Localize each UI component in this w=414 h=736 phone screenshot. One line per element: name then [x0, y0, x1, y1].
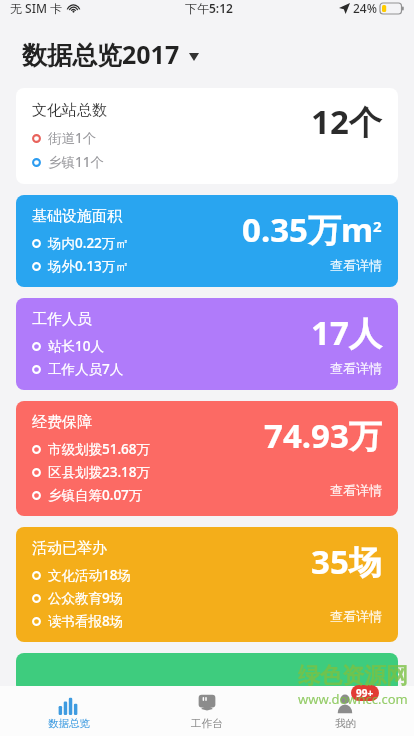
- button[interactable]: 数据总览: [0, 686, 138, 736]
- staticText: 活动已举办: [32, 539, 107, 558]
- staticText: 查看详情: [330, 257, 382, 273]
- staticText: 35场: [311, 539, 382, 584]
- staticText: 数据总览: [48, 717, 90, 730]
- staticText: www.downcc.com: [298, 690, 408, 708]
- staticText: 数据总览2017: [22, 37, 180, 71]
- staticText: 场外0.13万㎡: [48, 257, 129, 275]
- staticText: 经费保障: [32, 413, 92, 432]
- staticText: 0.35万m2: [242, 207, 382, 252]
- staticText: 文化活动18场: [48, 566, 131, 584]
- button[interactable]: 我的: [276, 686, 414, 736]
- staticText: 无 SIM 卡: [10, 0, 63, 16]
- staticText: 绿色资源网: [298, 662, 408, 690]
- staticText: 区县划拨23.18万: [48, 463, 151, 481]
- staticText: 查看详情: [330, 482, 382, 498]
- staticText: 工作人员7人: [48, 360, 124, 378]
- button[interactable]: 活动已举办: [16, 527, 398, 642]
- button[interactable]: 查看详情: [330, 360, 382, 376]
- button[interactable]: 经费保障: [16, 401, 398, 516]
- button[interactable]: 基础设施面积: [16, 195, 398, 287]
- staticText: 基础设施面积: [32, 207, 122, 226]
- staticText: 公众教育9场: [48, 589, 124, 607]
- staticText: 工作台: [191, 717, 223, 730]
- staticText: 下午5:12: [185, 0, 233, 16]
- staticText: 站长10人: [48, 337, 104, 355]
- staticText: 24%: [353, 0, 377, 16]
- staticText: 场内0.22万㎡: [48, 234, 129, 252]
- staticText: 工作人员: [32, 310, 92, 329]
- staticText: 17人: [311, 310, 382, 355]
- button[interactable]: 查看详情: [330, 608, 382, 624]
- staticText: 查看详情: [330, 360, 382, 376]
- button[interactable]: [16, 653, 398, 693]
- staticText: 乡镇11个: [48, 153, 104, 171]
- staticText: 乡镇自筹0.07万: [48, 486, 143, 504]
- staticText: 99+: [356, 686, 374, 700]
- button[interactable]: 数据总览2017: [22, 26, 414, 82]
- staticText: 市级划拨51.68万: [48, 440, 151, 458]
- button[interactable]: 查看详情: [330, 257, 382, 273]
- button[interactable]: 工作台: [138, 686, 276, 736]
- staticText: 读书看报8场: [48, 612, 124, 630]
- staticText: 我的: [335, 717, 356, 730]
- staticText: 查看详情: [330, 608, 382, 624]
- button[interactable]: 查看详情: [330, 482, 382, 498]
- staticText: 街道1个: [48, 129, 97, 147]
- staticText: 74.93万: [264, 413, 382, 458]
- button[interactable]: 工作人员: [16, 298, 398, 390]
- staticText: 12个: [311, 99, 382, 144]
- staticText: 文化站总数: [32, 101, 107, 120]
- button[interactable]: 文化站总数: [16, 88, 398, 184]
